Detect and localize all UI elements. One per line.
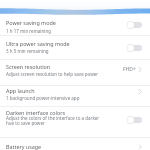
staticText: 3 h 5 min remaining bbox=[6, 48, 49, 54]
staticText: hue to save power bbox=[6, 120, 45, 126]
button[interactable]: Open bbox=[138, 66, 142, 73]
button[interactable]: Open bbox=[138, 144, 142, 150]
button[interactable]: Power saving mode bbox=[0, 16, 150, 35]
staticText: Power saving mode bbox=[6, 19, 56, 26]
staticText: Adjust the colors of the interface to a … bbox=[6, 115, 100, 121]
button[interactable]: Battery usage bbox=[0, 138, 150, 150]
button[interactable]: Open bbox=[138, 88, 142, 95]
staticText: 1 background power-intensive app bbox=[6, 95, 80, 101]
button[interactable]: Toggle bbox=[127, 22, 142, 28]
button[interactable]: Toggle bbox=[127, 117, 142, 123]
staticText: 1 h 17 min remaining bbox=[6, 28, 52, 34]
button[interactable]: Ultra power saving mode bbox=[0, 36, 150, 59]
staticText: Darken interface colors bbox=[6, 109, 65, 116]
button[interactable]: Darken interface colors bbox=[0, 107, 150, 137]
staticText: Battery usage bbox=[6, 143, 42, 150]
staticText: FHD+ bbox=[123, 66, 136, 73]
button[interactable]: Screen resolution bbox=[0, 60, 150, 85]
button[interactable]: Toggle bbox=[127, 45, 142, 51]
staticText: App launch bbox=[6, 87, 35, 94]
staticText: Screen resolution bbox=[6, 63, 51, 70]
staticText: Ultra power saving mode bbox=[6, 40, 70, 47]
button[interactable]: App launch bbox=[0, 86, 150, 106]
staticText: Adjust screen resolution to help save po… bbox=[6, 71, 99, 77]
